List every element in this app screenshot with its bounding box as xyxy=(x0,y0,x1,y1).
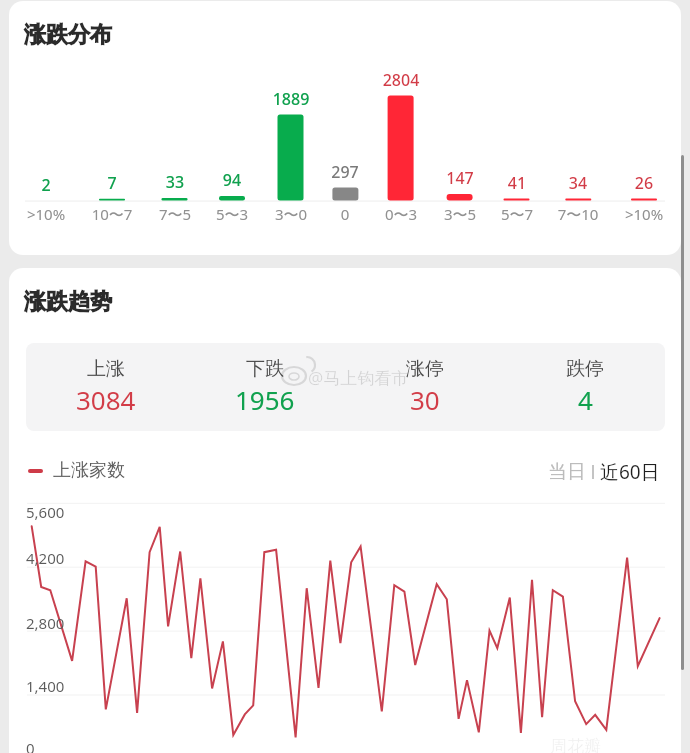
staticText: @马上钩看市 xyxy=(308,366,409,389)
staticText: 41 xyxy=(487,172,547,194)
staticText: 上涨家数 xyxy=(53,459,125,482)
staticText: 7〜5 xyxy=(140,204,210,224)
button[interactable]: 34 xyxy=(548,172,608,194)
button[interactable]: 涨停 xyxy=(345,357,505,417)
staticText: 34 xyxy=(548,172,608,194)
staticText: 4,200 xyxy=(26,548,65,568)
staticText: 1889 xyxy=(261,88,321,110)
button[interactable]: 下跌 xyxy=(185,357,345,417)
staticText: 5〜7 xyxy=(482,204,552,224)
button[interactable]: 41 xyxy=(487,172,547,194)
button[interactable]: 94 xyxy=(202,169,262,191)
staticText: 26 xyxy=(614,172,674,194)
button[interactable]: 2804 xyxy=(371,69,431,91)
staticText: 5,600 xyxy=(26,502,65,522)
staticText: 涨跌趋势 xyxy=(24,288,112,316)
button[interactable]: 1889 xyxy=(261,88,321,110)
staticText: 10〜7 xyxy=(77,204,147,224)
staticText: 3〜0 xyxy=(256,204,326,224)
button[interactable]: 26 xyxy=(614,172,674,194)
staticText: 涨跌分布 xyxy=(24,21,112,49)
button[interactable]: 7 xyxy=(82,172,142,194)
staticText: 2,800 xyxy=(26,613,65,633)
staticText: 3084 xyxy=(76,382,136,417)
staticText: 7〜10 xyxy=(543,204,613,224)
staticText: 297 xyxy=(315,161,375,183)
button[interactable]: 33 xyxy=(145,171,205,193)
button[interactable]: 297 xyxy=(315,161,375,183)
staticText: 5〜3 xyxy=(197,204,267,224)
staticText: 1956 xyxy=(235,382,295,417)
staticText: 2804 xyxy=(371,69,431,91)
button[interactable] xyxy=(9,1,681,255)
staticText: 3〜5 xyxy=(425,204,495,224)
staticText: 涨停 xyxy=(406,357,444,381)
staticText: 7 xyxy=(82,172,142,194)
staticText: >10% xyxy=(609,204,679,224)
staticText: 30 xyxy=(410,382,440,417)
staticText: 0 xyxy=(310,204,380,224)
button[interactable] xyxy=(9,268,681,753)
staticText: 2 xyxy=(16,174,76,196)
staticText: >10% xyxy=(11,204,81,224)
staticText: 94 xyxy=(202,169,262,191)
staticText: 跌停 xyxy=(566,357,604,381)
staticText: 33 xyxy=(145,171,205,193)
staticText: 上涨 xyxy=(87,357,125,381)
staticText: 周花瓣 xyxy=(550,736,601,753)
button[interactable]: 跌停 xyxy=(505,357,665,417)
staticText: 4 xyxy=(578,382,593,417)
staticText: 0 xyxy=(26,738,35,753)
staticText: 147 xyxy=(430,167,490,189)
staticText: 0〜3 xyxy=(366,204,436,224)
button[interactable]: 上涨 xyxy=(26,357,185,417)
button[interactable]: 上涨家数 xyxy=(28,459,125,482)
button[interactable]: 当日 xyxy=(548,460,586,484)
button[interactable]: 2 xyxy=(16,174,76,196)
button[interactable]: 近60日 xyxy=(600,459,660,485)
button[interactable]: 147 xyxy=(430,167,490,189)
staticText: 1,400 xyxy=(26,676,65,696)
staticText: 下跌 xyxy=(246,357,284,381)
